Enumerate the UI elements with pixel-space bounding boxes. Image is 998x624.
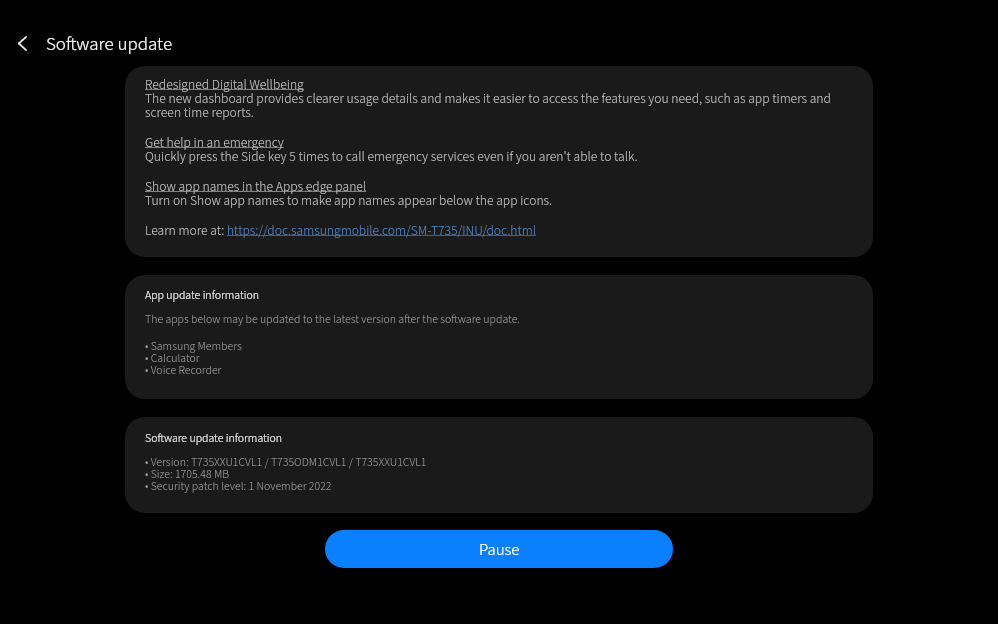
staticText: The apps below may be updated to the lat… bbox=[145, 311, 521, 328]
staticText: Show app names in the Apps edge panel bbox=[145, 177, 367, 196]
staticText: • Security patch level: 1 November 2022 bbox=[145, 478, 332, 495]
button[interactable]: App update information bbox=[125, 275, 873, 399]
staticText: Software update information bbox=[145, 430, 283, 447]
button[interactable]: Pause bbox=[325, 530, 673, 568]
button[interactable]: Redesigned Digital Wellbeing bbox=[125, 66, 873, 257]
staticText: • Calculator bbox=[145, 350, 200, 367]
staticText: Pause bbox=[479, 538, 520, 562]
staticText: Software update bbox=[46, 31, 173, 58]
staticText: • Voice Recorder bbox=[145, 362, 222, 379]
staticText: Redesigned Digital Wellbeing bbox=[145, 75, 304, 94]
staticText: App update information bbox=[145, 287, 259, 304]
staticText: The new dashboard provides clearer usage… bbox=[145, 89, 831, 108]
staticText: Learn more at: https://doc.samsungmobile… bbox=[145, 221, 536, 240]
staticText: Quickly press the Side key 5 times to ca… bbox=[145, 147, 638, 166]
staticText: • Size: 1705.48 MB bbox=[145, 466, 229, 483]
staticText: Get help in an emergency bbox=[145, 133, 284, 152]
staticText: Turn on Show app names to make app names… bbox=[145, 191, 553, 210]
staticText: • Version: T735XXU1CVL1 / T735ODM1CVL1 /… bbox=[145, 454, 427, 471]
button[interactable]: Software update information bbox=[125, 417, 873, 513]
staticText: • Samsung Members bbox=[145, 338, 242, 355]
button[interactable]: Navigate up bbox=[0, 31, 44, 55]
staticText: screen time reports. bbox=[145, 103, 254, 122]
